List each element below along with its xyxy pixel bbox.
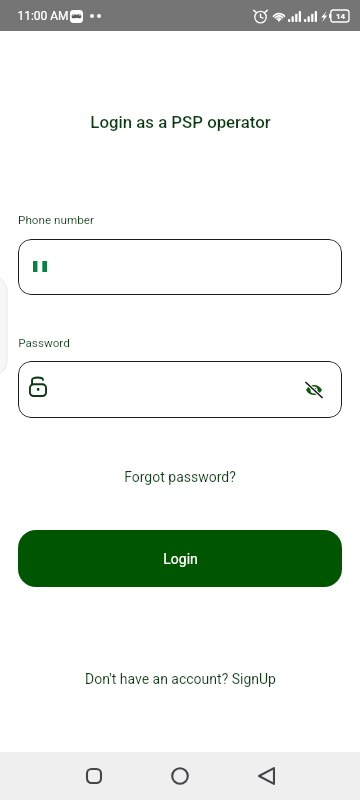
button[interactable]: Back: [244, 754, 288, 798]
staticText: 11:00 AM: [17, 9, 69, 23]
button[interactable]: Forgot password?: [116, 465, 244, 489]
button[interactable]: Show password: [299, 375, 329, 405]
staticText: 14: [336, 12, 345, 21]
staticText: Don't have an account? SignUp: [85, 671, 276, 687]
staticText: Login as a PSP operator: [90, 112, 271, 132]
staticText: Login: [163, 551, 198, 567]
staticText: Phone number: [18, 213, 94, 227]
button[interactable]: Phone number field: [18, 239, 342, 295]
button[interactable]: Password field: [18, 361, 342, 418]
button[interactable]: Home: [158, 754, 202, 798]
staticText: Forgot password?: [124, 469, 236, 485]
button[interactable]: Login: [18, 530, 342, 587]
staticText: Password: [18, 336, 70, 350]
button[interactable]: Recent apps: [72, 754, 116, 798]
button[interactable]: Don't have an account? SignUp: [77, 667, 284, 691]
